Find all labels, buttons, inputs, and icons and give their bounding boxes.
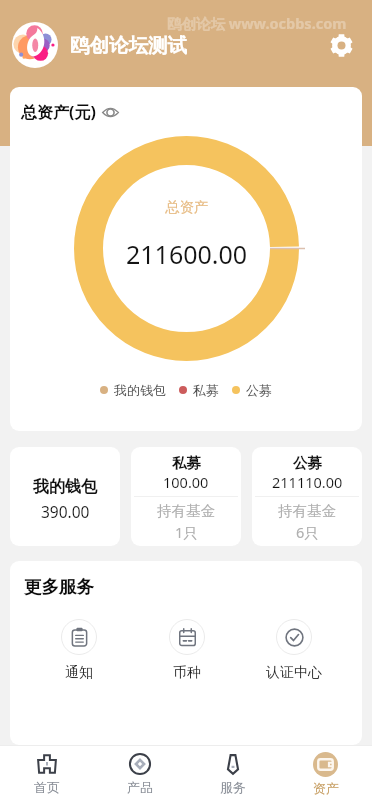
staticText: 我的钱包 [33,477,97,497]
staticText: 390.00 [41,501,90,522]
button[interactable]: 通知 [25,619,133,682]
button[interactable]: Settings [324,28,358,62]
staticText: 服务 [220,779,246,795]
staticText: 211110.00 [272,472,343,492]
staticText: 首页 [34,779,60,795]
staticText: 更多服务 [24,576,94,598]
button[interactable]: 币种 [133,619,240,682]
staticText: 公募 [293,454,322,472]
button[interactable]: 产品 [93,745,186,802]
button[interactable]: 资产 [279,745,372,802]
staticText: 6只 [296,522,319,542]
staticText: 1只 [175,522,198,542]
staticText: 鸥创论坛测试 [70,33,187,58]
staticText: 持有基金 [157,502,215,520]
staticText: 211600.00 [126,237,248,271]
staticText: 认证中心 [266,664,322,682]
button[interactable]: Toggle visibility [102,104,119,121]
button[interactable]: 私募 [131,447,241,546]
staticText: 总资产 [165,198,209,216]
staticText: 鸥创论坛 www.ocbbs.com [167,13,347,33]
staticText: 私募 [193,382,219,398]
staticText: 资产 [313,780,339,796]
staticText: 100.00 [163,472,209,492]
staticText: 产品 [127,779,153,795]
button[interactable]: 首页 [0,745,93,802]
staticText: 我的钱包 [114,382,166,398]
button[interactable]: 认证中心 [240,619,347,682]
button[interactable]: 我的钱包 [10,447,120,546]
staticText: 币种 [173,664,201,682]
staticText: 通知 [65,664,93,682]
staticText: 私募 [172,454,201,472]
button[interactable]: 服务 [186,745,279,802]
staticText: 总资产(元) [21,101,96,123]
staticText: 持有基金 [278,502,336,520]
staticText: 公募 [246,382,272,398]
button[interactable]: 公募 [252,447,362,546]
